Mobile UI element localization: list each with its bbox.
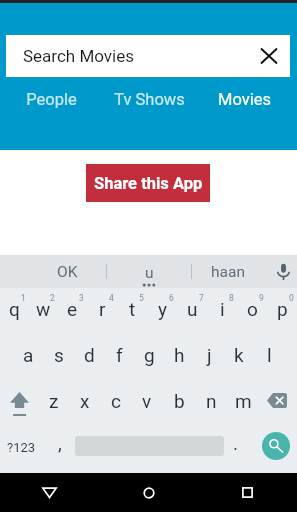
button[interactable]: l xyxy=(254,334,284,380)
button[interactable]: k xyxy=(224,334,254,380)
button[interactable]: e xyxy=(58,288,87,334)
staticText: 8 xyxy=(229,293,234,303)
button[interactable]: u xyxy=(177,288,207,334)
staticText: m xyxy=(235,390,252,412)
button[interactable]: x xyxy=(69,380,100,426)
staticText: Tv Shows xyxy=(114,90,185,109)
staticText: ?123 xyxy=(7,440,36,455)
button[interactable]: z xyxy=(38,380,69,426)
staticText: a xyxy=(23,344,34,366)
staticText: q xyxy=(9,298,20,320)
button[interactable]: haan xyxy=(192,255,264,288)
staticText: g xyxy=(144,344,155,366)
staticText: , xyxy=(58,432,62,454)
staticText: u xyxy=(145,264,154,282)
button[interactable]: n xyxy=(195,380,227,426)
staticText: haan xyxy=(211,263,245,281)
staticText: l xyxy=(267,344,272,366)
staticText: n xyxy=(206,390,217,412)
button[interactable]: Voice input xyxy=(269,255,297,288)
button[interactable]: Share this App xyxy=(86,164,210,202)
button[interactable]: , xyxy=(45,426,75,472)
staticText: z xyxy=(49,390,59,412)
staticText: c xyxy=(111,390,121,412)
staticText: k xyxy=(234,344,244,366)
button[interactable]: Movies xyxy=(195,85,293,113)
button[interactable]: o xyxy=(237,288,267,334)
staticText: d xyxy=(84,344,95,366)
button[interactable]: j xyxy=(194,334,224,380)
button[interactable]: a xyxy=(13,334,44,380)
button[interactable]: People xyxy=(2,85,100,113)
staticText: b xyxy=(174,390,185,412)
staticText: Share this App xyxy=(94,174,203,193)
button[interactable]: w xyxy=(29,288,58,334)
button[interactable]: Backspace xyxy=(259,380,297,426)
staticText: 7 xyxy=(199,293,204,303)
staticText: w xyxy=(36,298,51,320)
staticText: . xyxy=(233,432,239,454)
staticText: 3 xyxy=(79,293,84,303)
button[interactable]: v xyxy=(131,380,163,426)
staticText: v xyxy=(142,390,152,412)
staticText: x xyxy=(80,390,90,412)
staticText: 5 xyxy=(139,293,144,303)
button[interactable]: ?123 xyxy=(0,426,42,472)
staticText: u xyxy=(187,298,198,320)
button[interactable]: Search xyxy=(262,432,290,460)
button[interactable]: s xyxy=(44,334,74,380)
button[interactable]: Clear search xyxy=(257,44,281,68)
button[interactable]: b xyxy=(163,380,195,426)
staticText: 2 xyxy=(50,293,55,303)
staticText: OK xyxy=(57,263,78,281)
button[interactable]: c xyxy=(100,380,131,426)
staticText: t xyxy=(129,298,136,320)
button[interactable]: m xyxy=(227,380,259,426)
button[interactable]: q xyxy=(0,288,29,334)
button[interactable]: t xyxy=(117,288,147,334)
staticText: 0 xyxy=(289,293,294,303)
button[interactable]: Recent apps xyxy=(198,473,297,512)
button[interactable]: i xyxy=(207,288,237,334)
button[interactable]: f xyxy=(104,334,134,380)
button[interactable]: h xyxy=(164,334,194,380)
staticText: Movies xyxy=(218,90,271,109)
staticText: s xyxy=(54,344,64,366)
staticText: 9 xyxy=(259,293,264,303)
button[interactable]: y xyxy=(147,288,177,334)
staticText: i xyxy=(220,298,225,320)
staticText: o xyxy=(247,298,258,320)
staticText: 6 xyxy=(169,293,174,303)
button[interactable]: r xyxy=(87,288,117,334)
staticText: r xyxy=(99,298,106,320)
button[interactable]: d xyxy=(74,334,104,380)
button[interactable]: g xyxy=(134,334,164,380)
button[interactable]: OK xyxy=(20,255,114,288)
button[interactable]: Search Movies xyxy=(6,35,290,77)
staticText: e xyxy=(67,298,78,320)
button[interactable]: . xyxy=(224,426,246,472)
button[interactable]: Home xyxy=(99,473,198,512)
staticText: p xyxy=(277,298,288,320)
button[interactable]: u xyxy=(107,255,191,288)
button[interactable]: Shift xyxy=(0,380,38,426)
staticText: j xyxy=(207,344,212,366)
button[interactable]: p xyxy=(267,288,297,334)
staticText: y xyxy=(158,298,167,320)
staticText: People xyxy=(26,90,77,109)
staticText: Search Movies xyxy=(23,46,135,66)
button[interactable]: Back xyxy=(0,473,99,512)
staticText: 4 xyxy=(109,293,114,303)
staticText: f xyxy=(116,344,123,366)
staticText: 1 xyxy=(21,293,26,303)
staticText: h xyxy=(174,344,185,366)
button[interactable]: Tv Shows xyxy=(100,85,198,113)
